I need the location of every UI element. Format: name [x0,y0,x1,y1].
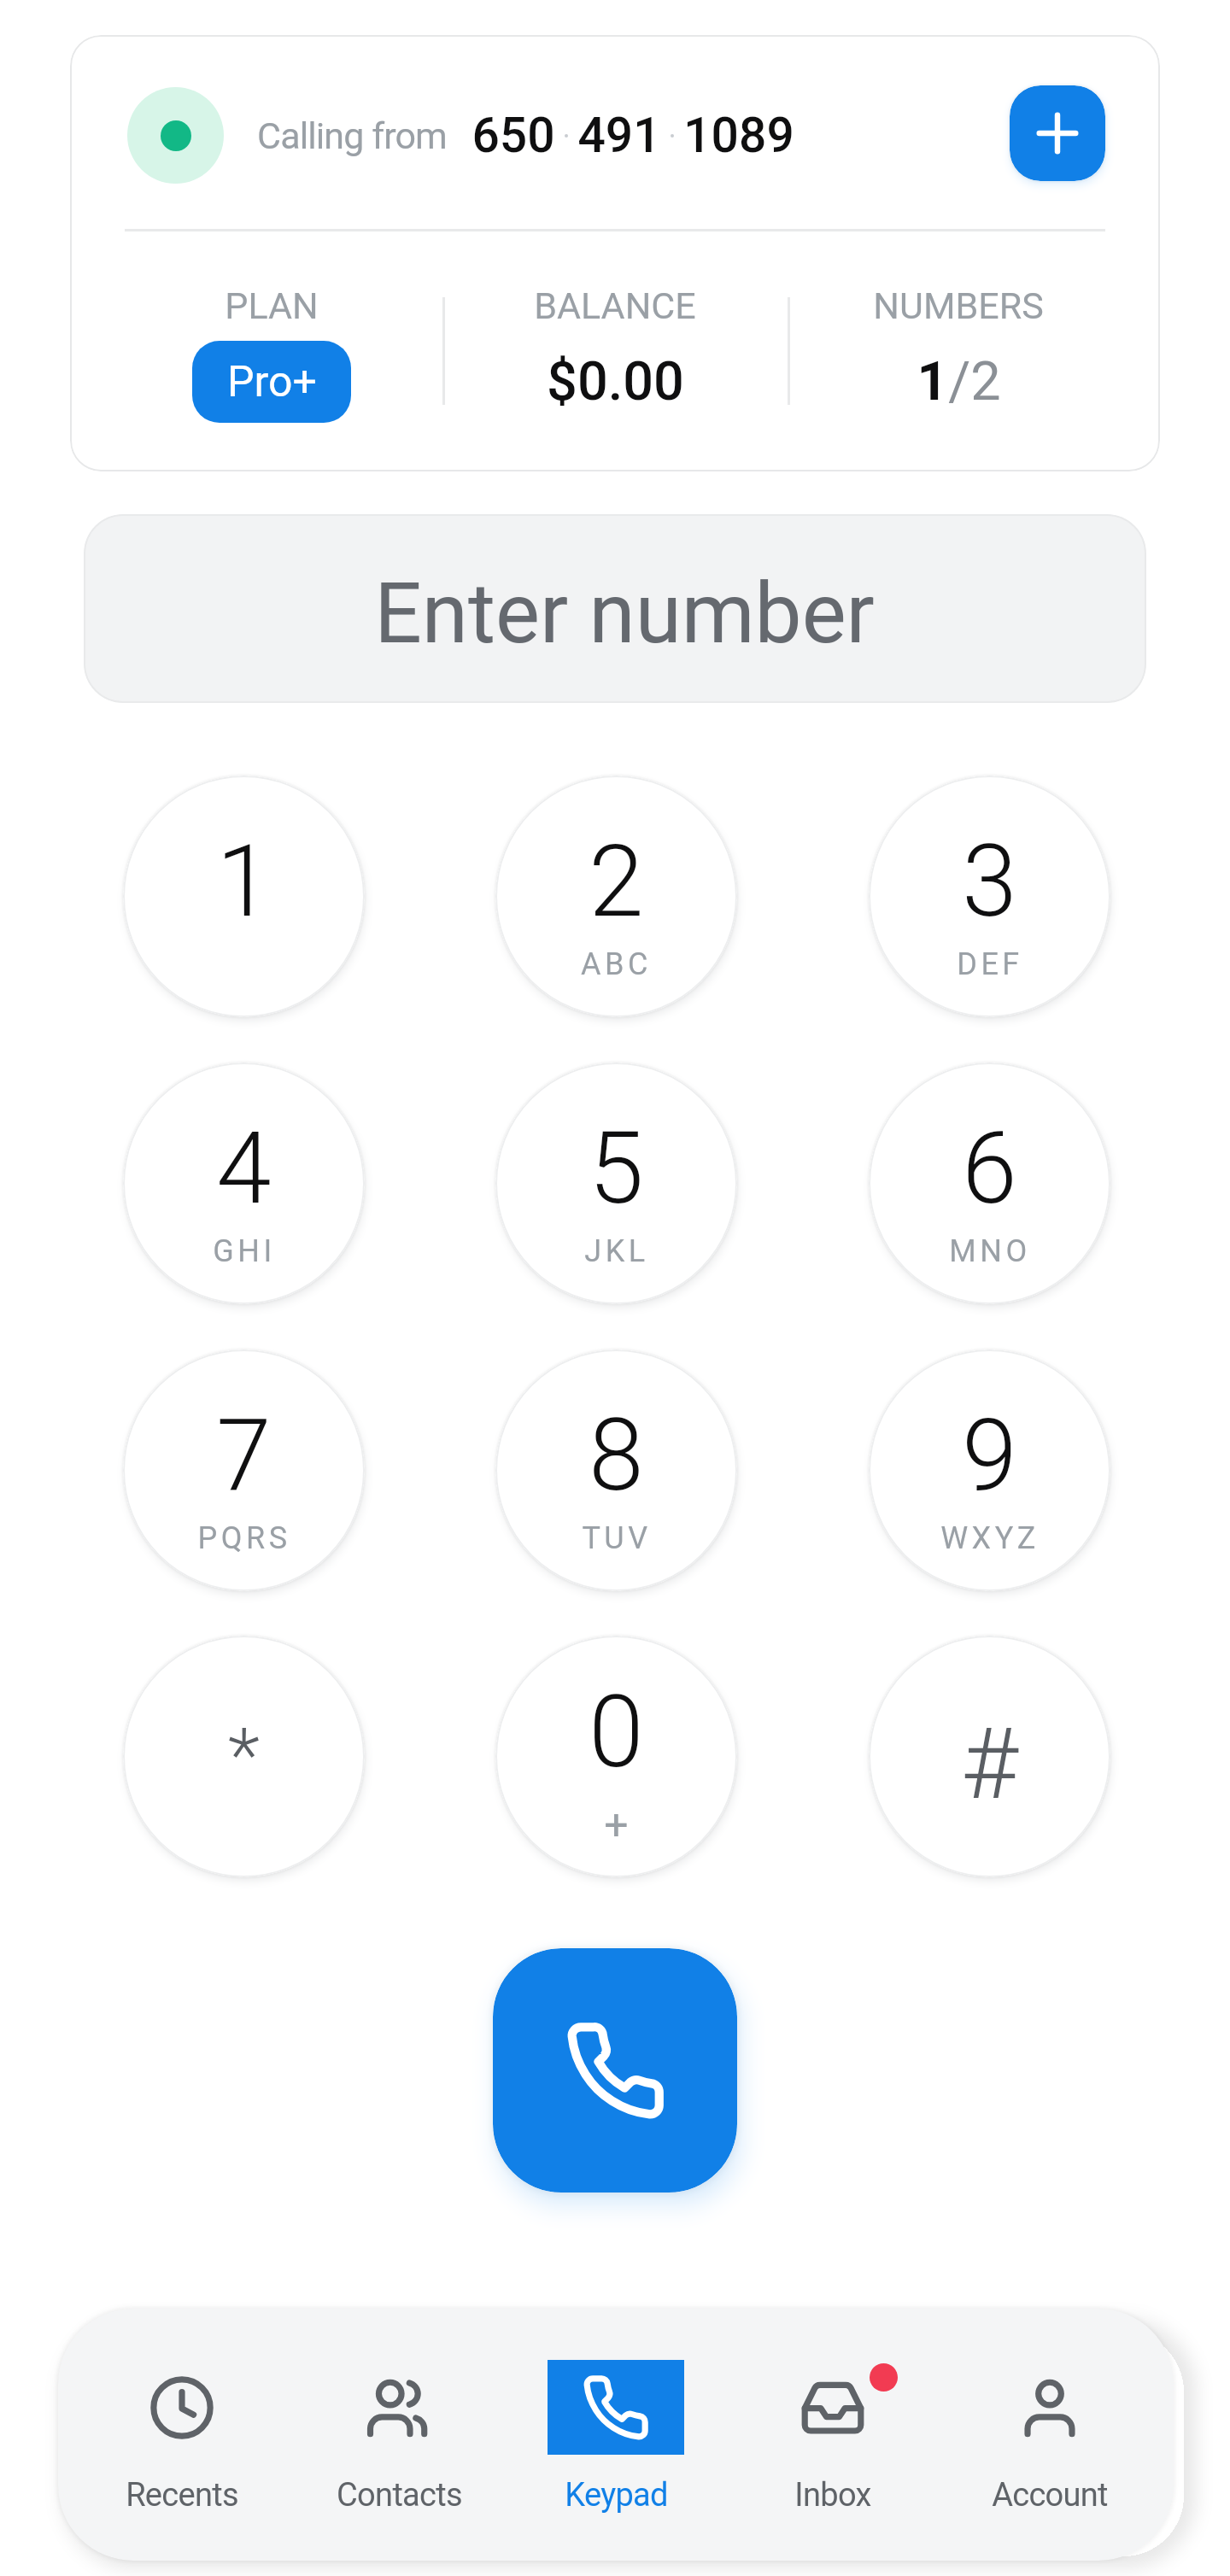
staticText: JKL [584,1233,649,1269]
staticText: 1 [216,823,272,940]
staticText: * [228,1712,260,1799]
button[interactable]: 6 [869,1063,1110,1304]
button[interactable]: Calling from [70,35,1160,229]
staticText: 4 [216,1110,272,1227]
staticText: Inbox [794,2476,871,2515]
button[interactable]: Recents [73,2309,290,2561]
button[interactable]: Enter number [84,514,1146,703]
staticText: WXYZ [940,1520,1040,1556]
button[interactable]: Inbox [724,2309,941,2561]
staticText: GHI [213,1233,276,1269]
staticText: Enter number [374,565,875,663]
button[interactable]: Add a number [1010,85,1105,181]
staticText: # [961,1707,1018,1822]
staticText: + [604,1800,629,1851]
staticText: 0 [589,1674,644,1790]
staticText: MNO [949,1233,1031,1269]
button[interactable]: 7 [123,1349,365,1591]
button[interactable]: 9 [869,1349,1110,1591]
staticText: $0.00 [547,350,684,413]
staticText: Contacts [337,2476,462,2515]
staticText: 9 [962,1397,1017,1513]
button[interactable]: Call [493,1948,737,2193]
staticText: Account [992,2476,1108,2515]
staticText: 7 [216,1397,272,1513]
staticText: Keypad [565,2476,668,2515]
staticText: 650 [471,107,555,164]
staticText: 8 [589,1397,644,1513]
staticText: 1089 [683,107,794,164]
staticText: Pro+ [227,357,317,407]
staticText: 5 [589,1110,644,1227]
staticText: 491 [577,107,661,164]
button[interactable]: # [869,1636,1110,1877]
staticText: /2 [948,350,1001,413]
staticText: Recents [126,2476,238,2515]
staticText: 6 [962,1110,1017,1227]
staticText: NUMBERS [873,284,1044,327]
button[interactable]: 8 [495,1349,737,1591]
staticText: DEF [957,946,1023,982]
staticText: PLAN [225,284,319,327]
button[interactable]: Contacts [290,2309,507,2561]
staticText: 2 [589,823,644,940]
staticText: 3 [962,823,1017,940]
button[interactable]: 3 [869,776,1110,1017]
button[interactable]: 4 [123,1063,365,1304]
staticText: ABC [581,946,652,982]
staticText: TUV [582,1520,652,1556]
button[interactable]: * [123,1636,365,1877]
staticText: 1 [917,350,948,413]
button[interactable]: 2 [495,776,737,1017]
button[interactable]: Account [941,2309,1158,2561]
button[interactable]: Keypad [507,2309,724,2561]
button[interactable]: Pro+ [192,341,351,423]
button[interactable]: 1 [123,776,365,1017]
button[interactable]: 5 [495,1063,737,1304]
staticText: PQRS [197,1520,291,1556]
button[interactable]: 0 [495,1636,737,1877]
staticText: BALANCE [534,284,696,327]
staticText: Calling from [257,114,447,157]
